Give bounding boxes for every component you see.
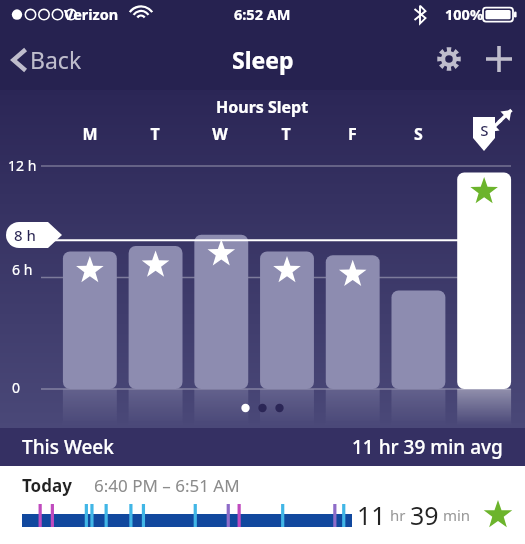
button[interactable]: Back [0,44,92,75]
staticText: S [480,120,489,140]
staticText: Hours Slept [216,96,309,118]
staticText: 6 h [12,260,33,279]
staticText: 11 hr 39 min avg [352,434,503,460]
button[interactable]: Add [473,33,525,85]
staticText: min [439,505,471,525]
button[interactable]: Expand chart [479,100,521,142]
staticText: 11 [357,498,386,532]
staticText: Back [30,44,82,75]
staticText: F [348,123,357,145]
staticText: W [212,123,228,145]
staticText: 12 h [8,156,37,175]
staticText: This Week [22,434,114,460]
button[interactable]: This Week [0,428,525,466]
staticText: 39 [410,498,439,532]
staticText: 8 h [14,225,36,245]
staticText: 100% [445,4,483,24]
staticText: 6:40 PM – 6:51 AM [94,474,240,497]
staticText: 6:52 AM [234,4,291,24]
button[interactable]: Settings [425,35,473,83]
staticText: M [82,123,98,145]
staticText: Sleep [232,44,294,75]
staticText: Verizon [64,4,119,24]
staticText: 0 [12,378,21,397]
staticText: S [414,123,423,145]
button[interactable]: Today [0,466,525,544]
staticText: hr [386,505,410,525]
staticText: T [281,123,291,145]
staticText: T [150,123,160,145]
staticText: Today [22,474,72,497]
